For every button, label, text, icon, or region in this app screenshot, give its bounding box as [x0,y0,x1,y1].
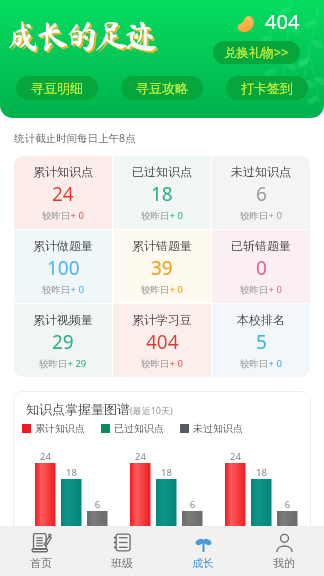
staticText: 较昨日+ 0 [42,283,84,296]
staticText: 累计知识点 [33,164,93,179]
staticText: 6 [256,181,267,207]
staticText: 成长的足迹 [8,19,156,52]
button[interactable]: 累计知识点 [14,156,112,229]
staticText: 较昨日+ 0 [240,283,282,296]
button[interactable]: 我的 [243,526,324,576]
button[interactable]: 打卡签到 [226,76,308,100]
staticText: 较昨日+ 0 [141,209,183,222]
staticText: 成长的足迹 [10,21,158,54]
staticText: 24 [35,450,56,463]
staticText: 24 [52,181,74,207]
staticText: 累计做题量 [33,238,93,253]
staticText: 5 [256,329,267,355]
staticText: 100 [47,255,80,281]
staticText: (最近10天) [130,404,173,416]
staticText: 较昨日+ 0 [42,209,84,222]
staticText: 0 [256,255,267,281]
button[interactable]: 寻豆攻略 [121,76,203,100]
staticText: 我的 [273,556,295,570]
staticText: 24 [225,450,246,463]
staticText: 24 [130,450,151,463]
button[interactable]: 首页 [0,526,81,576]
staticText: 未过知识点 [193,422,243,435]
staticText: 累计知识点 [35,422,85,435]
button[interactable]: 累计错题量 [113,230,211,303]
staticText: 寻豆攻略 [136,80,188,96]
button[interactable]: 寻豆明细 [16,76,98,100]
button[interactable]: 累计做题量 [14,230,112,303]
button[interactable]: 未过知识点 [212,156,310,229]
button[interactable]: 兑换礼物>> [213,41,300,64]
button[interactable]: 累计视频量 [14,304,112,377]
staticText: 累计错题量 [132,238,192,253]
staticText: 已过知识点 [132,164,192,179]
staticText: 404 [265,8,300,35]
button[interactable]: 成长 [162,526,243,576]
staticText: 较昨日+ 0 [141,283,183,296]
staticText: 打卡签到 [241,80,293,96]
staticText: 18 [151,181,173,207]
button[interactable]: 已过知识点 [113,156,211,229]
staticText: 已斩错题量 [231,238,291,253]
staticText: 首页 [30,556,52,570]
staticText: 统计截止时间每日上午8点 [14,131,136,145]
button[interactable]: 累计学习豆 [113,304,211,377]
staticText: 39 [151,255,173,281]
staticText: 已过知识点 [114,422,164,435]
staticText: 知识点掌握量图谱 [26,401,130,417]
staticText: 兑换礼物>> [224,44,289,61]
staticText: 较昨日+ 0 [240,209,282,222]
staticText: 累计视频量 [33,312,93,327]
staticText: 18 [251,466,272,479]
staticText: 6 [182,498,203,511]
staticText: 未过知识点 [231,164,291,179]
staticText: 班级 [111,556,133,570]
button[interactable]: 已斩错题量 [212,230,310,303]
staticText: 29 [52,329,74,355]
button[interactable]: 本校排名 [212,304,310,377]
button[interactable]: 班级 [81,526,162,576]
staticText: 404 [146,329,179,355]
staticText: 累计学习豆 [132,312,192,327]
staticText: 成长 [192,556,214,570]
staticText: 6 [277,498,298,511]
staticText: 较昨日+ 29 [39,357,87,370]
staticText: 6 [87,498,108,511]
staticText: 18 [156,466,177,479]
staticText: 较昨日+ 0 [240,357,282,370]
staticText: 寻豆明细 [31,80,83,96]
staticText: 18 [61,466,82,479]
staticText: 较昨日+ 0 [141,357,183,370]
staticText: 本校排名 [237,312,285,327]
